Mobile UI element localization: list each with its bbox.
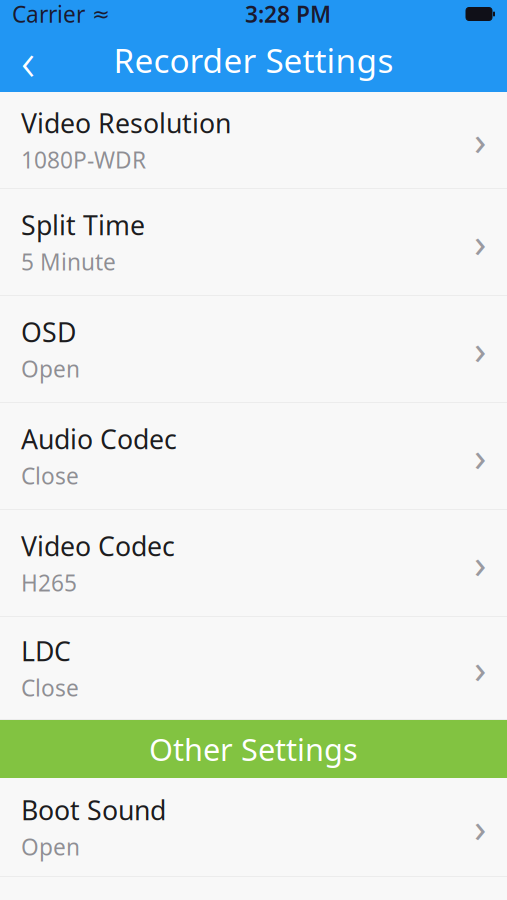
staticText: ≈ bbox=[85, 2, 110, 26]
staticText: Open bbox=[21, 832, 80, 862]
staticText: Close bbox=[21, 673, 79, 703]
button[interactable]: Other Settings bbox=[0, 720, 507, 778]
staticText: Open bbox=[21, 354, 80, 384]
staticText: › bbox=[474, 113, 486, 166]
staticText: 5 Minute bbox=[21, 247, 116, 277]
staticText: Carrier bbox=[12, 0, 85, 29]
staticText: OSD bbox=[21, 314, 76, 350]
staticText: Audio Codec bbox=[21, 421, 177, 457]
staticText: Video Resolution bbox=[21, 105, 231, 141]
staticText: › bbox=[474, 641, 486, 694]
staticText: › bbox=[474, 429, 486, 482]
button[interactable]: LDC bbox=[0, 617, 507, 720]
button[interactable]: Video Resolution bbox=[0, 92, 507, 189]
staticText: › bbox=[474, 215, 486, 268]
button[interactable]: OSD bbox=[0, 296, 507, 403]
button[interactable]: Video Codec bbox=[0, 510, 507, 617]
button[interactable]: Back bbox=[0, 28, 56, 92]
staticText: Other Settings bbox=[149, 729, 358, 769]
staticText: ‹ bbox=[21, 25, 35, 95]
staticText: 1080P-WDR bbox=[21, 145, 146, 175]
staticText: Recorder Settings bbox=[113, 38, 393, 82]
button[interactable]: Split Time bbox=[0, 189, 507, 296]
staticText: › bbox=[474, 800, 486, 853]
staticText: H265 bbox=[21, 568, 77, 598]
staticText: Split Time bbox=[21, 207, 145, 243]
button[interactable]: Audio Codec bbox=[0, 403, 507, 510]
staticText: › bbox=[474, 322, 486, 375]
staticText: LDC bbox=[21, 633, 71, 669]
staticText: Video Codec bbox=[21, 528, 175, 564]
button[interactable]: Boot Sound bbox=[0, 778, 507, 877]
staticText: Close bbox=[21, 461, 79, 491]
staticText: Boot Sound bbox=[21, 792, 166, 828]
staticText: › bbox=[474, 536, 486, 589]
staticText: 3:28 PM bbox=[245, 0, 331, 29]
